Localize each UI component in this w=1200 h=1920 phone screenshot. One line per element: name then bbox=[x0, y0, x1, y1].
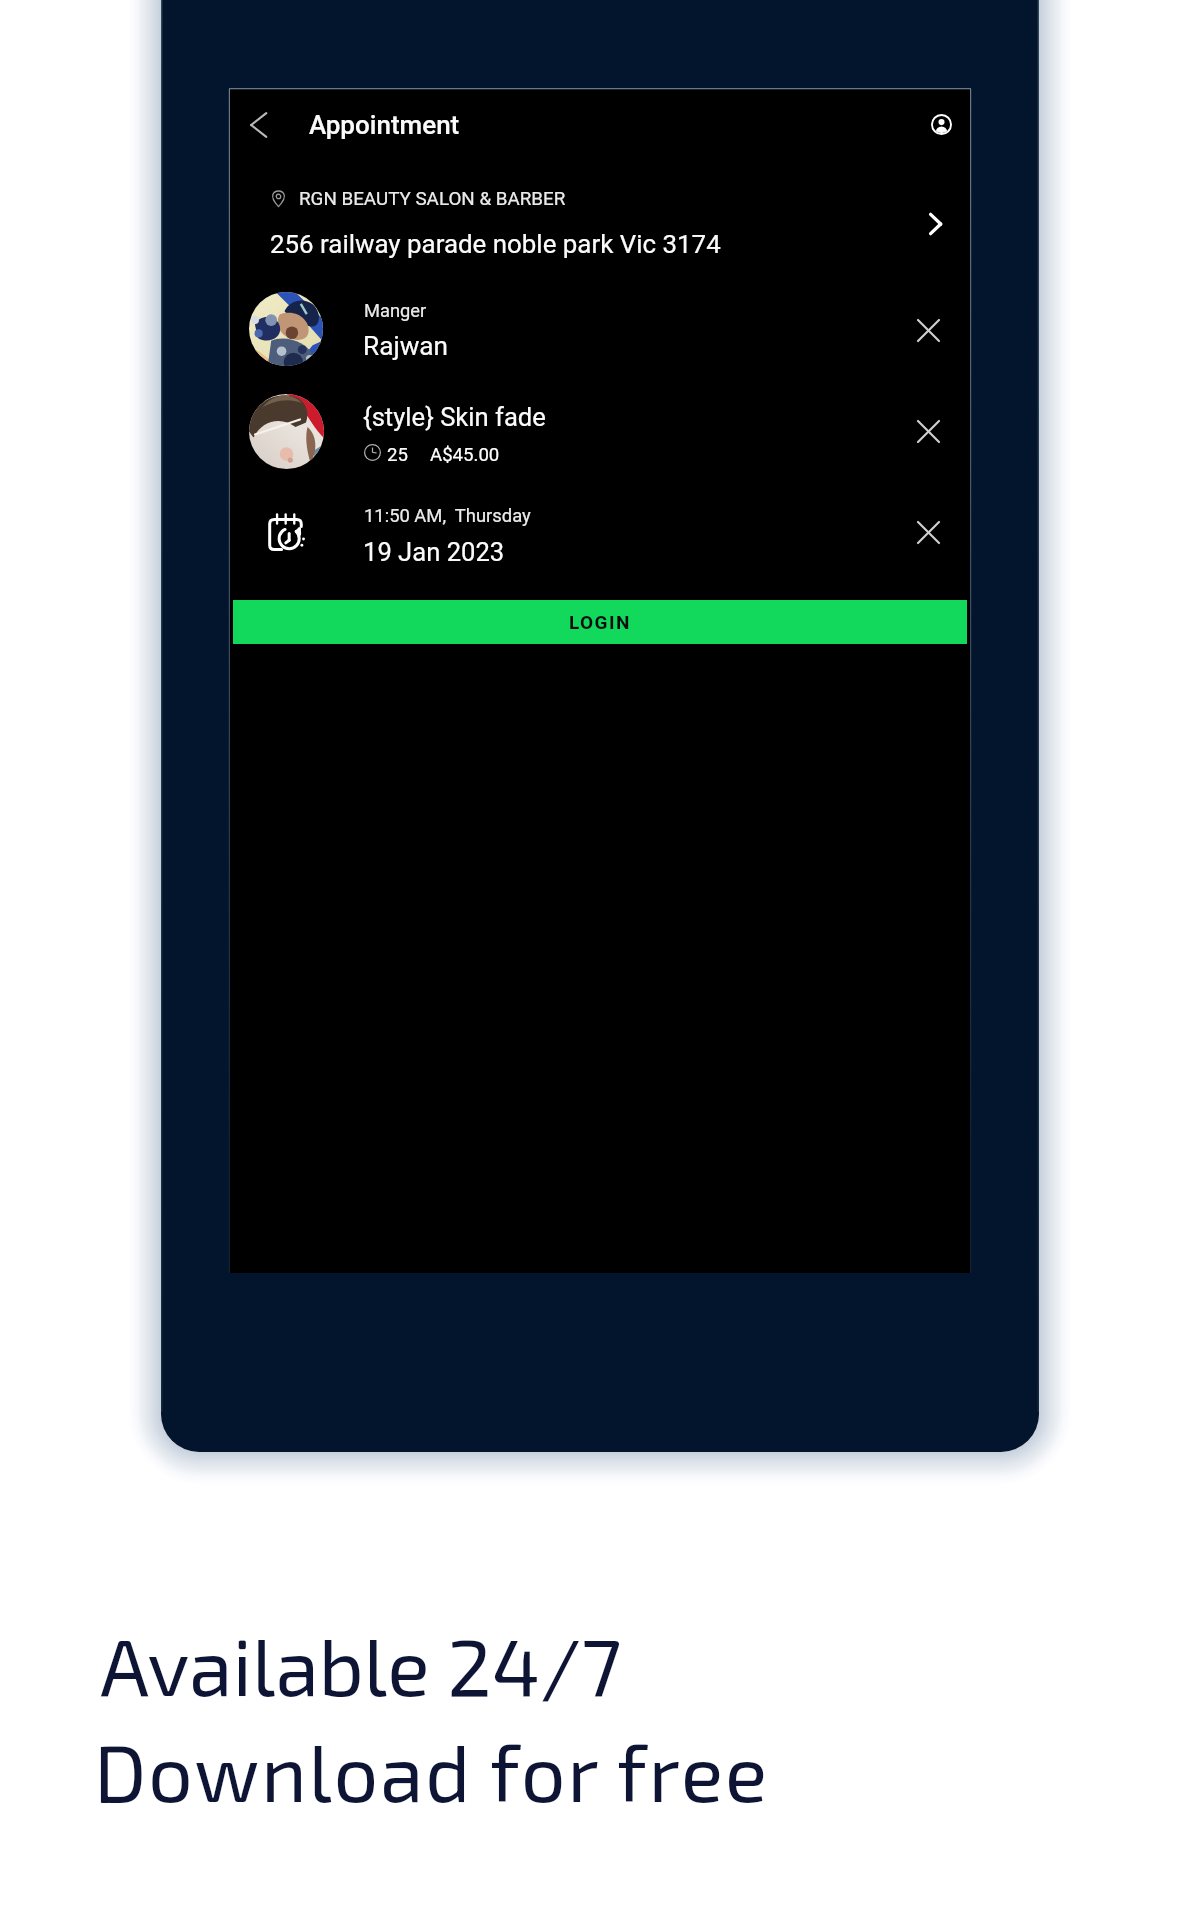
button[interactable]: RGN BEAUTY SALON & BARBER bbox=[230, 174, 970, 274]
button[interactable]: Remove bbox=[902, 405, 954, 457]
staticText: Available 24/7 bbox=[100, 1617, 622, 1712]
staticText: 25 bbox=[387, 444, 408, 466]
button[interactable]: Manger bbox=[230, 285, 970, 385]
button[interactable]: Account bbox=[914, 97, 968, 151]
staticText: Rajwan bbox=[363, 331, 449, 362]
staticText: {style} Skin fade bbox=[363, 402, 546, 432]
staticText: LOGIN bbox=[569, 611, 631, 633]
button[interactable]: Back bbox=[232, 98, 286, 152]
staticText: 256 railway parade noble park Vic 3174 bbox=[270, 229, 721, 259]
button[interactable]: Remove bbox=[902, 506, 954, 558]
staticText: A$45.00 bbox=[430, 444, 500, 466]
button[interactable]: Remove bbox=[902, 304, 954, 356]
button[interactable]: {style} Skin fade bbox=[230, 386, 970, 488]
staticText: Manger bbox=[364, 300, 427, 321]
button[interactable]: Open salon details bbox=[909, 198, 961, 250]
staticText: Download for free bbox=[94, 1723, 769, 1818]
staticText: 11:50 AM, Thursday bbox=[364, 505, 531, 527]
staticText: RGN BEAUTY SALON & BARBER bbox=[299, 188, 566, 210]
button[interactable]: 11:50 AM, Thursday bbox=[230, 489, 970, 591]
staticText: Appointment bbox=[309, 110, 460, 140]
button[interactable]: LOGIN bbox=[233, 600, 967, 644]
staticText: 19 Jan 2023 bbox=[363, 537, 505, 567]
